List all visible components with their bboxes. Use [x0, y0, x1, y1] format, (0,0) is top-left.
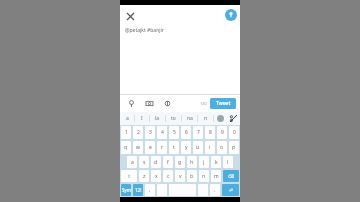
button[interactable]: Profile [225, 9, 237, 21]
button[interactable]: 8 [205, 126, 215, 139]
button[interactable]: i [205, 141, 215, 154]
staticText: k [215, 159, 218, 166]
button[interactable]: s [139, 156, 149, 168]
button[interactable]: j [199, 156, 209, 168]
staticText: q [124, 144, 128, 151]
staticText: ⏎ [229, 188, 233, 193]
staticText: s [143, 159, 146, 166]
button[interactable]: Camera [143, 97, 156, 110]
button[interactable]: b [187, 170, 197, 182]
staticText: u [196, 144, 200, 151]
button[interactable]: Tweet [210, 98, 236, 109]
button[interactable]: Backspace [223, 170, 239, 182]
button[interactable]: to [166, 112, 181, 125]
button[interactable]: 5 [169, 126, 179, 139]
staticText: , [149, 187, 151, 194]
button[interactable]: Poll [161, 97, 174, 110]
staticText: na [187, 115, 193, 122]
button[interactable]: Keyboard settings [227, 112, 240, 125]
staticText: 9 [221, 129, 224, 136]
staticText: y [185, 144, 188, 151]
button[interactable]: o [217, 141, 227, 154]
button[interactable]: 1 [121, 126, 131, 139]
staticText: 12! [135, 187, 142, 193]
button[interactable]: t [169, 141, 179, 154]
staticText: j [203, 159, 205, 166]
button[interactable]: a [120, 112, 134, 125]
button[interactable]: 0 [229, 126, 239, 139]
button[interactable]: d [151, 156, 161, 168]
staticText: b [190, 173, 194, 180]
button[interactable]: g [175, 156, 185, 168]
button[interactable]: v [175, 170, 185, 182]
staticText: 0 [233, 129, 236, 136]
button[interactable]: Shift [121, 170, 137, 182]
button[interactable]: k [211, 156, 221, 168]
button[interactable]: c [163, 170, 173, 182]
staticText: 5 [173, 129, 176, 136]
button[interactable]: z [139, 170, 149, 182]
staticText: 140 [200, 101, 207, 106]
button[interactable]: 7 [193, 126, 203, 139]
button[interactable]: 4 [157, 126, 167, 139]
button[interactable]: u [193, 141, 203, 154]
button[interactable]: a [127, 156, 137, 168]
button[interactable]: n [199, 170, 209, 182]
staticText: p [232, 144, 236, 151]
button[interactable]: Location [125, 97, 138, 110]
staticText: z [143, 173, 146, 180]
staticText: 2 [137, 129, 140, 136]
button[interactable]: y [181, 141, 191, 154]
button[interactable]: Numbers [133, 184, 143, 196]
button[interactable]: 9 [217, 126, 227, 139]
staticText: r [161, 144, 164, 151]
button[interactable]: 3 [145, 126, 155, 139]
button[interactable]: la [150, 112, 165, 125]
staticText: d [154, 159, 158, 166]
button[interactable]: r [157, 141, 167, 154]
button[interactable]: e [145, 141, 155, 154]
staticText: n [204, 115, 208, 122]
staticText: c [167, 173, 170, 180]
button[interactable]: n [198, 112, 213, 125]
staticText: la [155, 115, 160, 122]
staticText: 6 [185, 129, 188, 136]
button[interactable]: h [187, 156, 197, 168]
button[interactable]: 2 [133, 126, 143, 139]
staticText: a [126, 115, 129, 122]
button[interactable]: x [151, 170, 161, 182]
button[interactable]: 6 [181, 126, 191, 139]
staticText: to [171, 115, 176, 122]
staticText: a [131, 159, 134, 166]
staticText: Sym [122, 187, 131, 193]
button[interactable]: w [133, 141, 143, 154]
button[interactable]: Close [123, 9, 137, 23]
staticText: f [167, 159, 169, 166]
button[interactable]: , [145, 184, 155, 196]
button[interactable]: Enter [222, 184, 239, 196]
staticText: i [209, 144, 211, 151]
staticText: 3 [149, 129, 152, 136]
button[interactable]: More suggestions [214, 112, 227, 125]
staticText: h [190, 159, 194, 166]
button[interactable]: m [211, 170, 221, 182]
staticText: @petajkt #banjir [125, 27, 164, 34]
button[interactable]: I [135, 112, 149, 125]
button[interactable]: f [163, 156, 173, 168]
staticText: n [202, 173, 206, 180]
button[interactable]: na [182, 112, 197, 125]
staticText: v [179, 173, 182, 180]
staticText: 1 [125, 129, 128, 136]
button[interactable]: p [229, 141, 239, 154]
button[interactable]: l [223, 156, 233, 168]
button[interactable]: q [121, 141, 131, 154]
staticText: Tweet [216, 100, 231, 107]
staticText: o [220, 144, 224, 151]
button[interactable]: Symbols [121, 184, 131, 196]
staticText: t [173, 144, 175, 151]
staticText: w [136, 144, 140, 151]
button[interactable]: . [210, 184, 220, 196]
